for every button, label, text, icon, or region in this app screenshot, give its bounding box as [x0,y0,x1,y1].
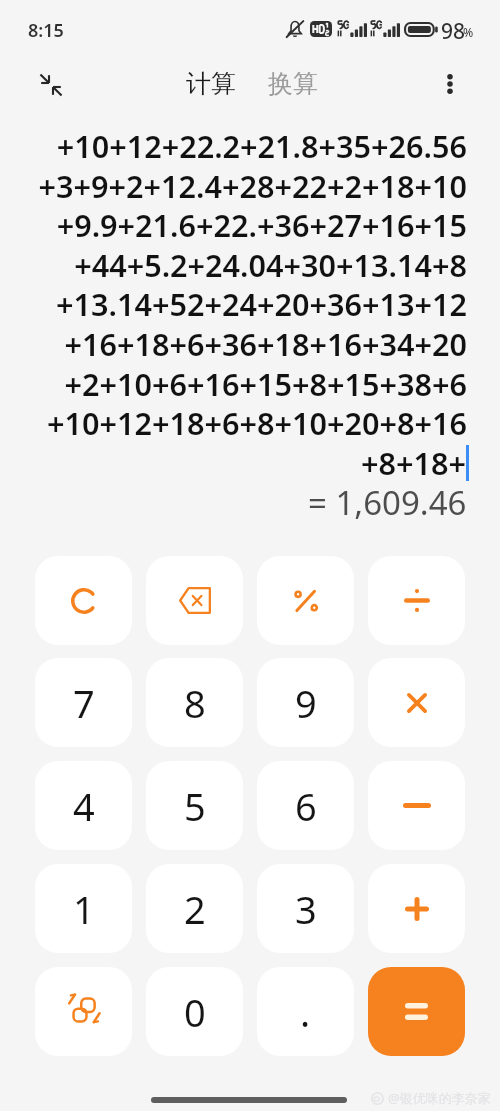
button[interactable]: 9 [257,658,354,747]
staticText: 9 [295,677,317,729]
staticText: 8:15 [28,18,64,43]
staticText: 0 [184,986,206,1038]
staticText: +16+18+6+36+18+16+34+20 [64,323,467,365]
staticText: +2+10+6+16+15+8+15+38+6 [64,363,467,405]
staticText: . [300,986,311,1038]
button[interactable] [257,556,354,645]
button[interactable]: 计算 [182,64,240,103]
staticText: 6 [295,780,317,832]
staticText: +44+5.2+24.04+30+13.14+8 [74,244,467,286]
staticText: 4 [73,780,95,832]
staticText: +10+12+22.2+21.8+35+26.56 [56,125,467,167]
staticText: 7 [73,677,95,729]
staticText: 换算 [268,68,318,99]
button[interactable] [35,556,132,645]
button[interactable]: 7 [35,658,132,747]
button[interactable]: Divide [368,556,465,645]
staticText: 98 [441,17,466,46]
button[interactable]: Multiply [368,658,465,747]
button[interactable]: 6 [257,761,354,850]
button[interactable]: 0 [146,967,243,1056]
button[interactable]: More options [428,62,472,106]
staticText: +3+9+2+12.4+28+22+2+18+10 [38,165,467,207]
button[interactable]: Minus [368,761,465,850]
button[interactable]: 换算 [264,64,322,103]
staticText: +8+18+ [361,442,466,484]
button[interactable]: Equals [368,967,465,1056]
staticText: = 1,609.46 [308,480,467,525]
staticText: 1 [73,883,95,935]
button[interactable]: 2 [146,864,243,953]
button[interactable]: 8 [146,658,243,747]
staticText: 5 [184,780,206,832]
button[interactable]: Collapse [28,62,74,108]
staticText: 3 [295,883,317,935]
staticText: +13.14+52+24+20+36+13+12 [56,283,467,325]
button[interactable]: 4 [35,761,132,850]
button[interactable]: 3 [257,864,354,953]
staticText: @银优咪的李奈家 [388,1089,491,1107]
staticText: 2 [184,883,206,935]
button[interactable]: Backspace [146,556,243,645]
button[interactable]: . [257,967,354,1056]
staticText: % [463,24,474,40]
button[interactable]: 1 [35,864,132,953]
button[interactable]: Plus [368,864,465,953]
button[interactable]: Unit converter [35,967,132,1056]
staticText: 计算 [186,68,236,99]
staticText: +10+12+18+6+8+10+20+8+16 [47,402,467,444]
button[interactable]: 5 [146,761,243,850]
staticText: 8 [184,677,206,729]
staticText: +9.9+21.6+22.+36+27+16+15 [56,204,467,246]
